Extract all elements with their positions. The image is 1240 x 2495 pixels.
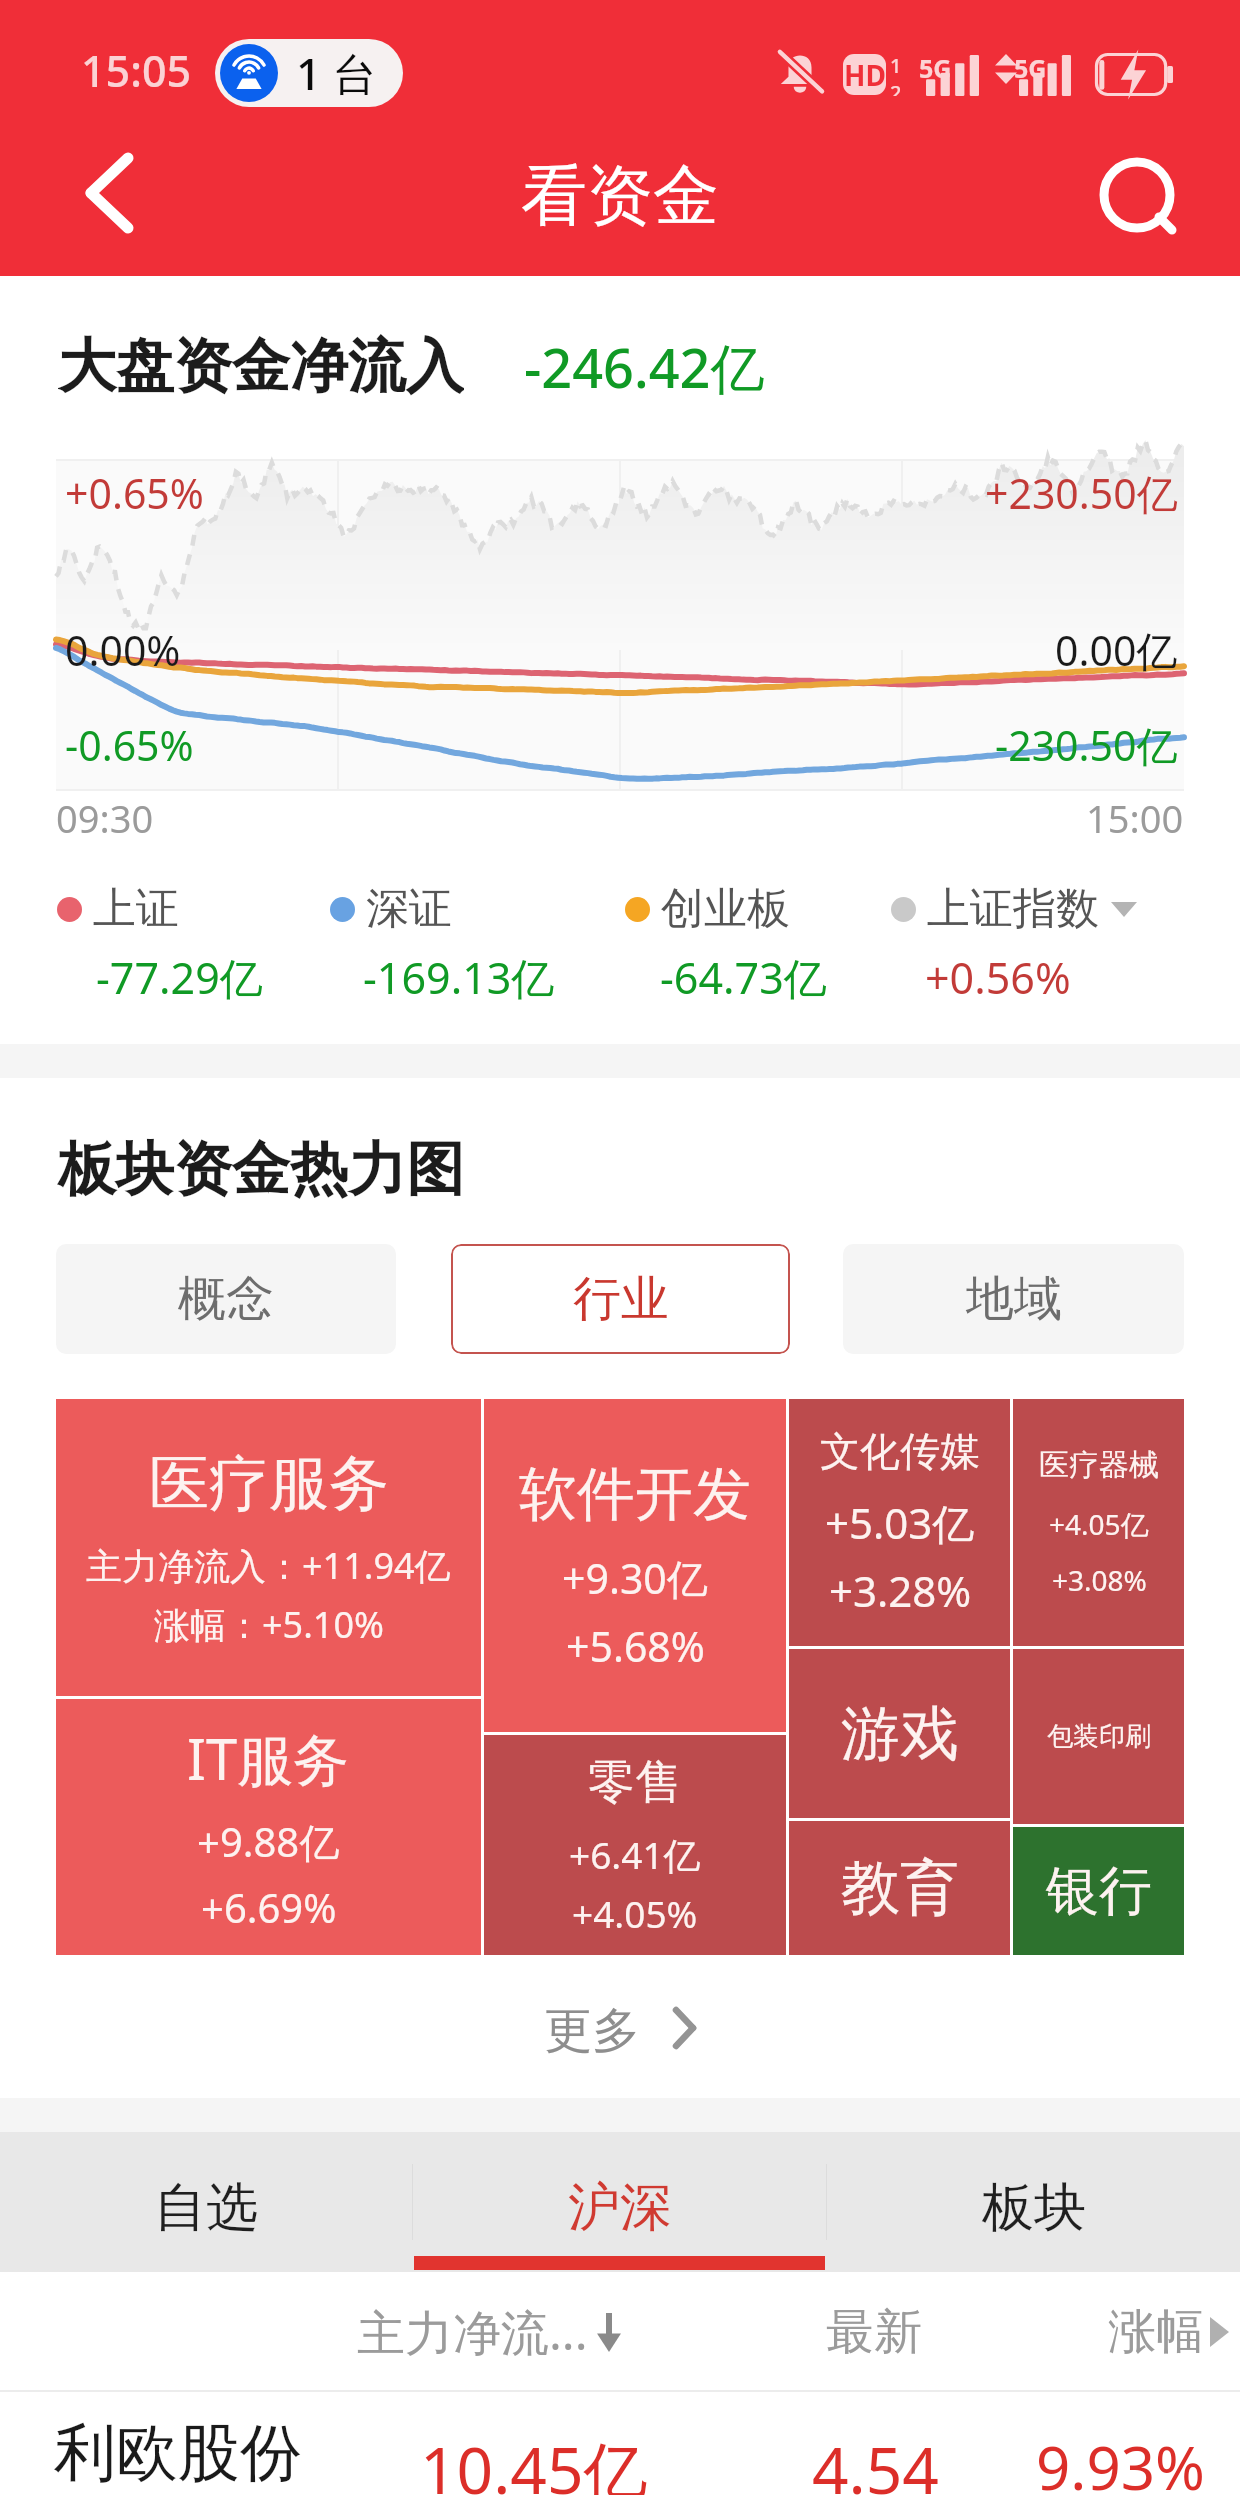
staticText: 1 — [890, 52, 902, 79]
staticText: +3.08% — [1052, 1561, 1147, 1599]
staticText: 深证 — [366, 882, 452, 936]
staticText: -0.65% — [65, 717, 194, 773]
button[interactable]: 零售 — [484, 1735, 786, 1955]
staticText: 创业板 — [661, 882, 790, 936]
staticText: 1 台 — [296, 43, 377, 103]
staticText: 主力净流入：+11.94亿 — [86, 1541, 451, 1590]
staticText: 4.54 — [812, 2426, 939, 2495]
staticText: 5G — [1014, 51, 1047, 85]
staticText: HD — [844, 56, 886, 94]
staticText: 银行 — [1046, 1858, 1152, 1925]
button[interactable]: Back — [57, 141, 161, 245]
button[interactable]: 利欧股份 — [0, 2392, 1240, 2495]
button[interactable]: Search — [1089, 144, 1185, 240]
staticText: 上证指数 — [927, 882, 1099, 936]
staticText: 涨幅 — [1108, 2302, 1204, 2362]
button[interactable]: 教育 — [789, 1821, 1010, 1955]
staticText: 0.00亿 — [1055, 622, 1178, 678]
staticText: 9.93% — [1036, 2426, 1205, 2495]
staticText: 医疗服务 — [149, 1446, 389, 1522]
button[interactable]: 创业板 — [625, 878, 790, 940]
button[interactable]: 最新 — [814, 2272, 934, 2392]
button[interactable]: 沪深 — [413, 2132, 826, 2272]
staticText: 行业 — [573, 1269, 669, 1329]
staticText: 0.00% — [65, 622, 181, 678]
staticText: 游戏 — [841, 1697, 959, 1771]
staticText: 自选 — [154, 2175, 258, 2241]
button[interactable]: 深证 — [330, 878, 452, 940]
staticText: +9.88亿 — [197, 1814, 340, 1869]
button[interactable]: 自选 — [0, 2132, 412, 2272]
button[interactable]: 医疗器械 — [1013, 1399, 1184, 1646]
staticText: 利欧股份 — [54, 2414, 302, 2492]
staticText: +6.41亿 — [569, 1829, 701, 1880]
staticText: +230.50亿 — [985, 465, 1178, 521]
button[interactable]: 银行 — [1013, 1827, 1184, 1955]
button[interactable]: 主力净流... — [357, 2272, 637, 2392]
staticText: 地域 — [966, 1269, 1062, 1329]
staticText: 更多 — [544, 2001, 640, 2061]
button[interactable]: 上证指数 — [891, 878, 1137, 940]
button[interactable]: 概念 — [56, 1244, 396, 1354]
staticText: -77.29亿 — [96, 948, 263, 1007]
button[interactable]: 文化传媒 — [789, 1399, 1010, 1646]
staticText: 板块资金热力图 — [58, 1133, 464, 1206]
staticText: 09:30 — [56, 792, 154, 844]
staticText: -64.73亿 — [660, 948, 827, 1007]
button[interactable]: IT服务 — [56, 1699, 481, 1955]
staticText: 涨幅：+5.10% — [154, 1600, 384, 1649]
staticText: +5.68% — [566, 1618, 705, 1674]
staticText: 概念 — [178, 1269, 274, 1329]
staticText: +9.30亿 — [562, 1550, 708, 1606]
staticText: 15:00 — [1086, 792, 1184, 844]
button[interactable]: 包装印刷 — [1013, 1649, 1184, 1824]
staticText: 10.45亿 — [420, 2426, 648, 2495]
button[interactable]: 涨幅 — [1108, 2272, 1229, 2392]
button[interactable]: 软件开发 — [484, 1399, 786, 1732]
button[interactable]: 更多 — [0, 2001, 1240, 2098]
staticText: +3.28% — [829, 1562, 972, 1619]
staticText: 教育 — [841, 1851, 959, 1925]
button[interactable]: 行业 — [451, 1244, 790, 1354]
staticText: 沪深 — [568, 2175, 672, 2241]
button[interactable]: 上证 — [57, 878, 179, 940]
staticText: 最新 — [826, 2302, 922, 2362]
staticText: 主力净流... — [357, 2299, 588, 2365]
staticText: IT服务 — [187, 1720, 350, 1796]
staticText: 文化传媒 — [820, 1426, 980, 1476]
button[interactable]: 地域 — [843, 1244, 1184, 1354]
staticText: 医疗器械 — [1039, 1446, 1159, 1484]
staticText: -246.42亿 — [524, 330, 765, 398]
staticText: 上证 — [93, 882, 179, 936]
staticText: 5G — [919, 51, 952, 85]
staticText: 大盘资金净流入 — [58, 330, 464, 398]
staticText: 软件开发 — [519, 1458, 751, 1531]
staticText: +0.56% — [925, 948, 1071, 1007]
staticText: 2 — [890, 79, 902, 96]
staticText: 包装印刷 — [1047, 1720, 1151, 1753]
staticText: 零售 — [588, 1753, 682, 1812]
staticText: +0.65% — [65, 465, 204, 521]
staticText: -230.50亿 — [995, 717, 1178, 773]
staticText: +6.69% — [201, 1880, 337, 1934]
button[interactable]: 医疗服务 — [56, 1399, 481, 1696]
staticText: 看资金 — [521, 154, 719, 237]
staticText: +4.05亿 — [1049, 1505, 1149, 1543]
staticText: -169.13亿 — [363, 948, 555, 1007]
staticText: +5.03亿 — [825, 1494, 975, 1551]
button[interactable]: 游戏 — [789, 1649, 1010, 1818]
staticText: +4.05% — [572, 1888, 698, 1938]
button[interactable]: 板块 — [827, 2132, 1240, 2272]
staticText: 15:05 — [81, 41, 192, 100]
staticText: 板块 — [982, 2175, 1086, 2241]
